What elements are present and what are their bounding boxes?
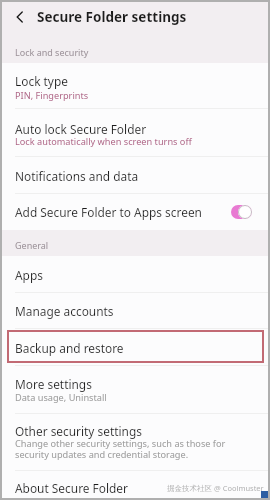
staticText: Add Secure Folder to Apps screen: [15, 204, 202, 220]
staticText: Change other security settings, such as …: [15, 437, 226, 461]
staticText: Secure Folder settings: [37, 8, 187, 26]
staticText: PIN, Fingerprints: [15, 89, 89, 102]
button[interactable]: Notifications and data: [0, 157, 270, 194]
staticText: Auto lock Secure Folder: [15, 121, 147, 137]
button[interactable]: Add Secure Folder to Apps screen: [0, 194, 270, 230]
button[interactable]: Lock type: [0, 63, 270, 109]
button[interactable]: Other security settings: [0, 414, 270, 471]
button[interactable]: Back: [6, 3, 34, 31]
staticText: General: [15, 239, 49, 251]
staticText: Apps: [15, 267, 43, 283]
staticText: Other security settings: [15, 423, 142, 439]
staticText: Notifications and data: [15, 168, 139, 184]
button[interactable]: More settings: [0, 366, 270, 414]
staticText: Lock and security: [15, 46, 89, 58]
button[interactable]: Auto lock Secure Folder: [0, 109, 270, 157]
staticText: Lock type: [15, 73, 68, 89]
staticText: About Secure Folder: [15, 480, 128, 496]
staticText: Data usage, Uninstall: [15, 391, 107, 404]
staticText: Manage accounts: [15, 303, 114, 319]
button[interactable]: Manage accounts: [0, 293, 270, 329]
button[interactable]: Apps: [0, 256, 270, 293]
staticText: Lock automatically when screen turns off: [15, 135, 192, 148]
button[interactable]: Backup and restore: [0, 329, 270, 366]
staticText: More settings: [15, 376, 92, 392]
button[interactable]: About Secure Folder: [0, 471, 270, 500]
staticText: Backup and restore: [15, 340, 124, 356]
staticText: 掘金技术社区 @ Coolmuster: [167, 483, 264, 493]
